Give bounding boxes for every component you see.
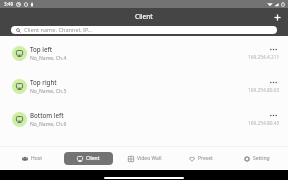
staticText: Host xyxy=(31,155,42,162)
button[interactable]: More options xyxy=(267,43,279,55)
button[interactable]: Add client xyxy=(271,11,283,23)
staticText: Top right xyxy=(30,78,57,86)
staticText: Setting xyxy=(253,155,270,162)
staticText: Top left xyxy=(30,45,53,53)
staticText: No_Name, Ch.6 xyxy=(30,121,67,128)
staticText: Client xyxy=(86,155,100,162)
button[interactable]: More options xyxy=(267,109,279,121)
button[interactable]: Top right xyxy=(0,70,288,103)
staticText: No_Name, Ch.4 xyxy=(30,55,67,62)
staticText: No_Name, Ch.5 xyxy=(30,88,67,95)
button[interactable]: More options xyxy=(267,76,279,88)
staticText: Preset xyxy=(198,155,213,162)
staticText: 169.254.80.45 xyxy=(248,120,280,127)
button[interactable]: Client xyxy=(64,152,113,165)
button[interactable]: Setting xyxy=(242,152,272,165)
staticText: 169.254.80.63 xyxy=(248,87,280,94)
button[interactable]: Top left xyxy=(0,37,288,70)
button[interactable]: Video Wall xyxy=(126,152,164,165)
button[interactable]: Client name, Channel, IP... xyxy=(11,26,277,34)
button[interactable]: Bottom left xyxy=(0,103,288,136)
staticText: Client xyxy=(135,12,153,21)
staticText: Video Wall xyxy=(137,155,162,162)
staticText: Bottom left xyxy=(30,111,64,119)
staticText: 169.254.4.211 xyxy=(248,54,280,61)
button[interactable]: Preset xyxy=(187,152,215,165)
staticText: Client name, Channel, IP... xyxy=(24,26,93,34)
staticText: 3:49 xyxy=(4,1,14,7)
button[interactable]: Host xyxy=(20,152,44,165)
